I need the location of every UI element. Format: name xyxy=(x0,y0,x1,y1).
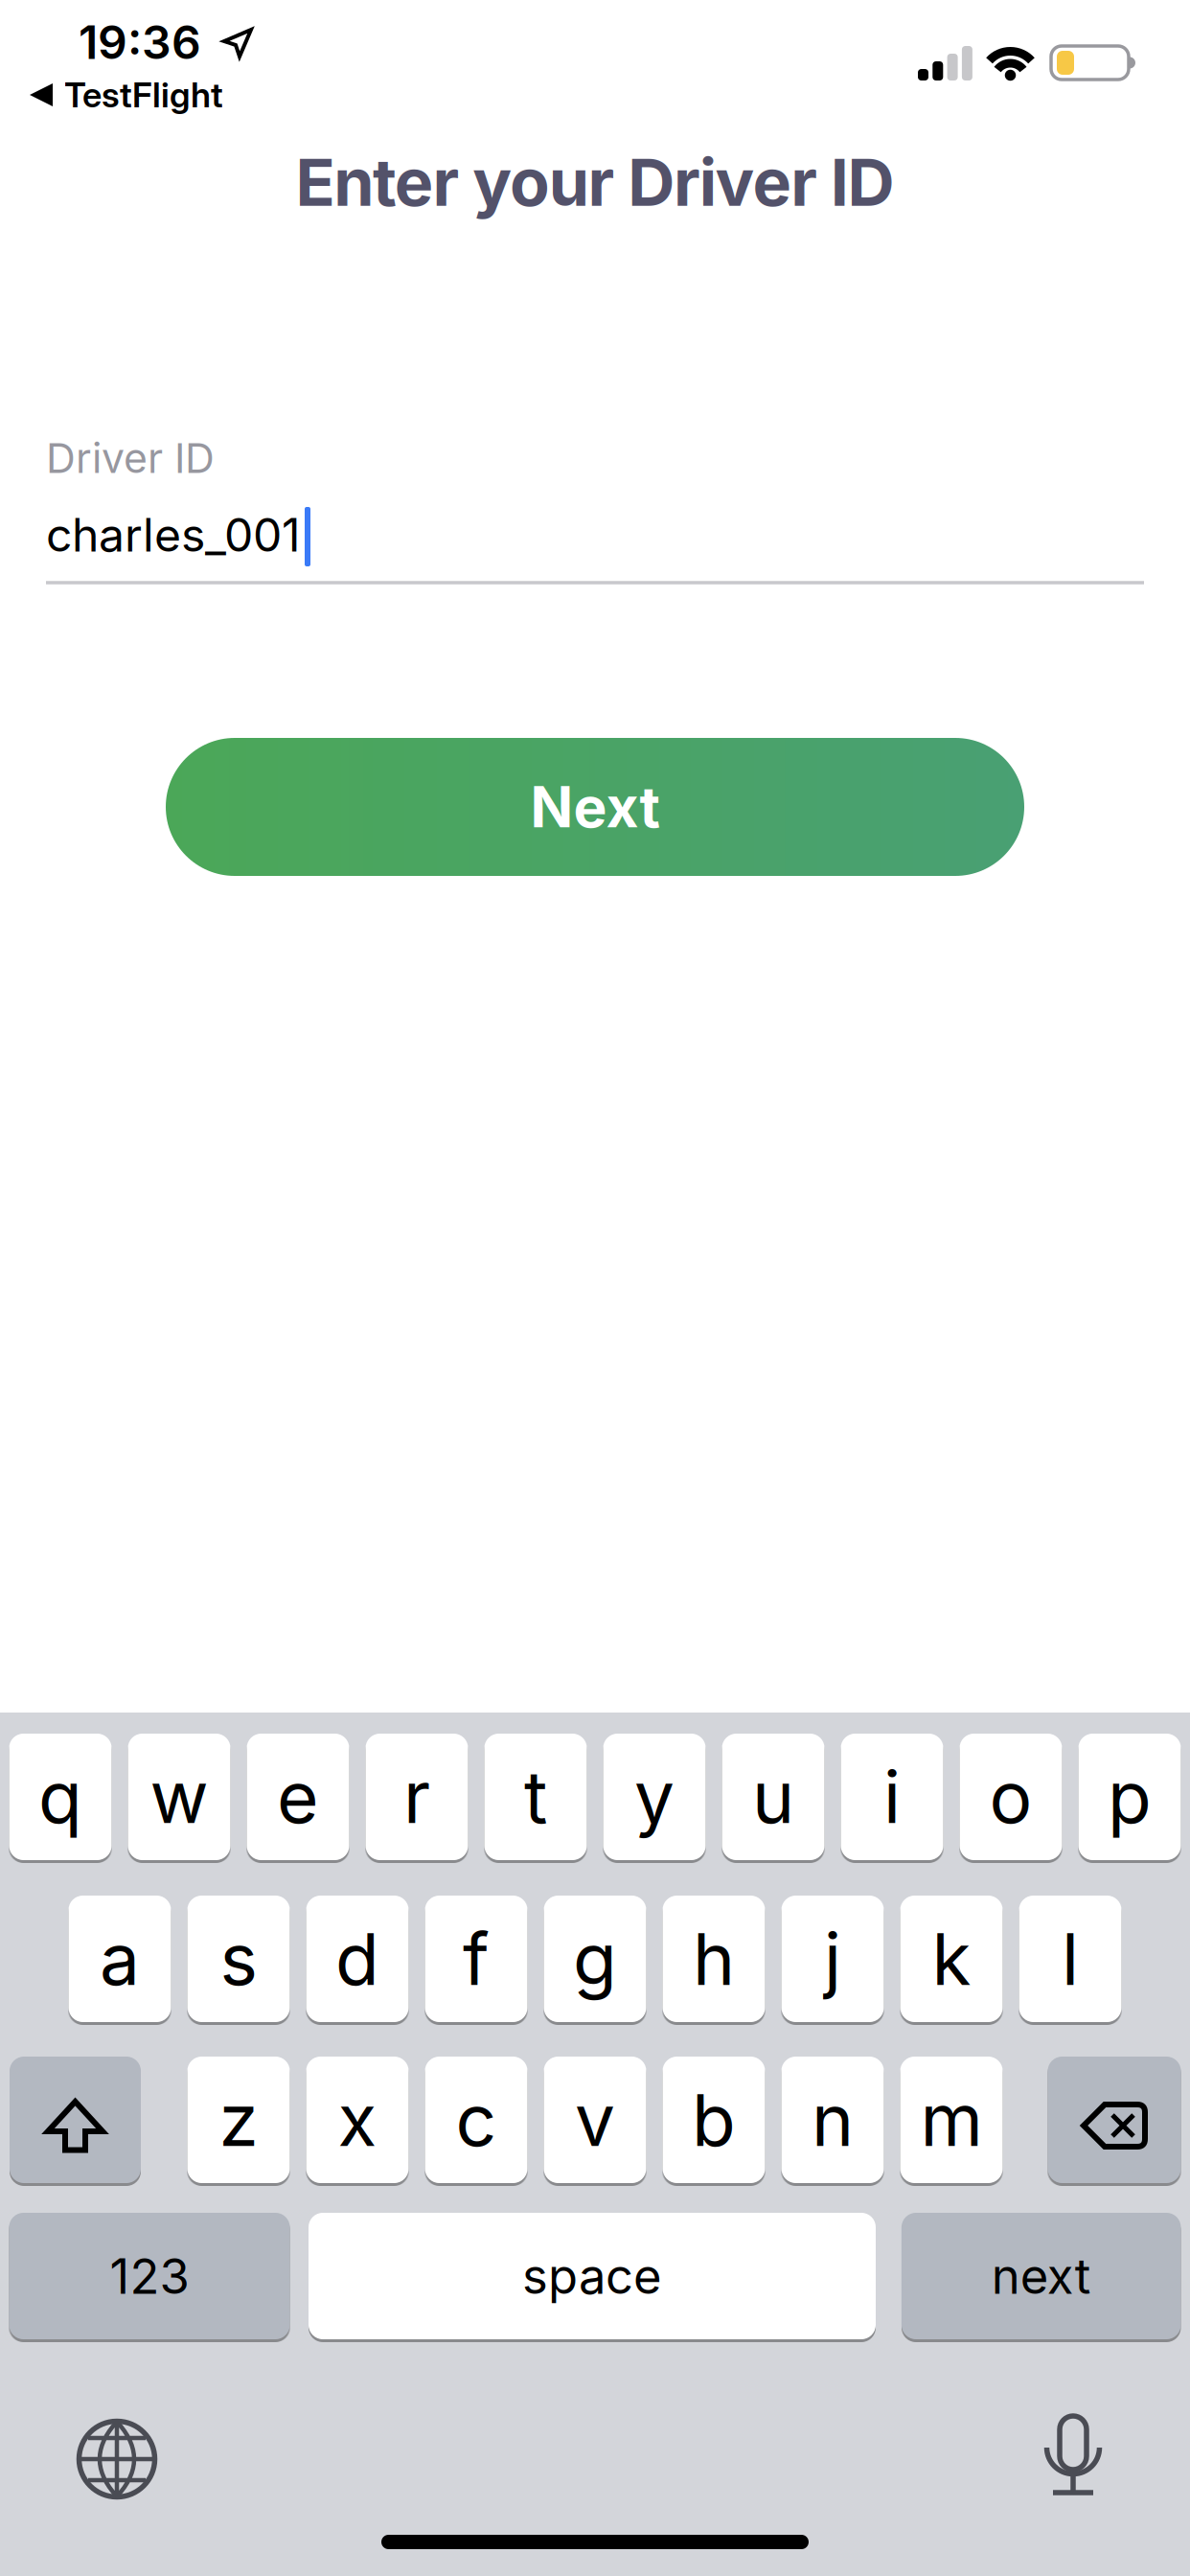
staticText: next xyxy=(991,2247,1091,2305)
staticText: e xyxy=(277,1755,319,1839)
button[interactable]: q xyxy=(9,1734,112,1860)
staticText: r xyxy=(403,1755,430,1839)
staticText: g xyxy=(573,1917,617,2001)
staticText: Driver ID xyxy=(46,434,215,482)
button[interactable]: f xyxy=(425,1896,527,2022)
button[interactable]: i xyxy=(841,1734,943,1860)
staticText: s xyxy=(220,1917,257,2001)
button[interactable]: s xyxy=(187,1896,290,2022)
staticText: b xyxy=(692,2078,736,2162)
button[interactable]: w xyxy=(128,1734,230,1860)
staticText: p xyxy=(1108,1755,1152,1839)
staticText: u xyxy=(752,1755,794,1839)
button[interactable]: Next keyboard xyxy=(77,2419,157,2499)
button[interactable]: p xyxy=(1078,1734,1181,1860)
button[interactable]: x xyxy=(306,2057,409,2183)
staticText: q xyxy=(38,1755,82,1839)
staticText: space xyxy=(522,2247,662,2305)
button[interactable]: j xyxy=(781,1896,884,2022)
button[interactable]: l xyxy=(1019,1896,1121,2022)
staticText: 123 xyxy=(110,2247,189,2305)
staticText: d xyxy=(335,1917,379,2001)
staticText: i xyxy=(883,1755,901,1839)
button[interactable]: t xyxy=(484,1734,587,1860)
button[interactable]: z xyxy=(187,2057,290,2183)
button[interactable]: h xyxy=(663,1896,765,2022)
button[interactable]: c xyxy=(425,2057,527,2183)
staticText: m xyxy=(920,2078,983,2162)
staticText: l xyxy=(1062,1917,1079,2001)
button[interactable]: Driver ID text field xyxy=(0,391,1190,621)
button[interactable]: r xyxy=(366,1734,468,1860)
button[interactable]: e xyxy=(247,1734,349,1860)
button[interactable]: space xyxy=(309,2213,876,2339)
button[interactable]: Delete xyxy=(1048,2057,1181,2183)
button[interactable]: next xyxy=(902,2213,1181,2339)
button[interactable]: m xyxy=(900,2057,1003,2183)
button[interactable]: 123 xyxy=(9,2213,290,2339)
button[interactable]: d xyxy=(306,1896,409,2022)
staticText: t xyxy=(524,1755,547,1839)
staticText: o xyxy=(989,1755,1032,1839)
staticText: a xyxy=(100,1917,140,2001)
button[interactable]: Shift xyxy=(10,2057,141,2183)
button[interactable]: a xyxy=(69,1896,171,2022)
staticText: y xyxy=(634,1755,675,1839)
staticText: Enter your Driver ID xyxy=(295,144,895,221)
staticText: x xyxy=(338,2078,377,2162)
button[interactable]: u xyxy=(722,1734,824,1860)
staticText: w xyxy=(150,1755,208,1839)
staticText: c xyxy=(456,2078,497,2162)
staticText: j xyxy=(824,1917,841,2001)
staticText: TestFlight xyxy=(64,75,223,115)
button[interactable]: Dictate xyxy=(1037,2413,1110,2495)
button[interactable]: Back to TestFlight xyxy=(30,68,375,122)
staticText: z xyxy=(219,2078,258,2162)
staticText: h xyxy=(693,1917,735,2001)
staticText: k xyxy=(932,1917,971,2001)
button[interactable]: y xyxy=(603,1734,706,1860)
staticText: 19:36 xyxy=(79,15,201,69)
button[interactable]: k xyxy=(900,1896,1003,2022)
button[interactable]: g xyxy=(544,1896,646,2022)
staticText: f xyxy=(463,1917,490,2001)
button[interactable]: o xyxy=(960,1734,1062,1860)
staticText: charles_001 xyxy=(46,508,301,562)
staticText: n xyxy=(812,2078,854,2162)
button[interactable]: b xyxy=(663,2057,765,2183)
staticText: Next xyxy=(530,774,660,840)
button[interactable]: n xyxy=(781,2057,884,2183)
staticText: v xyxy=(575,2078,615,2162)
button[interactable]: Next xyxy=(166,738,1024,876)
button[interactable]: v xyxy=(544,2057,646,2183)
